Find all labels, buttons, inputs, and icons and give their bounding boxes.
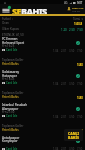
staticText: Istanbul Pasabah (2, 103, 28, 107)
staticText: 2.01 (61, 82, 67, 86)
staticText: 3.50 (69, 82, 75, 86)
staticText: Konyaspor (2, 139, 18, 143)
button[interactable]: CANLI BAHİS (64, 129, 83, 141)
button[interactable]: Canlı İzle (2, 81, 18, 85)
staticText: Galatasaray (2, 70, 20, 74)
staticText: Yrn 21:00 (2, 110, 15, 114)
staticText: Canlı İzle (6, 147, 18, 150)
staticText: 1.83 (77, 63, 83, 67)
staticText: 2.50 (69, 28, 75, 32)
staticText: GIRIS YAP (72, 6, 84, 9)
staticText: FC Emmen (2, 37, 18, 41)
button[interactable] (0, 36, 85, 54)
staticText: Yeterli Bahis (2, 95, 19, 99)
staticText: Alanyaspor (2, 107, 19, 111)
staticText: ÜYE OL (72, 9, 81, 12)
staticText: Toplanan Goller (2, 91, 24, 95)
staticText: 7.50 (77, 28, 83, 32)
staticText: 7.50 (77, 49, 83, 53)
staticText: 1.03.8 (74, 22, 83, 26)
staticText: ETKINLIK #1,50 (2, 33, 24, 37)
staticText: Yeterli Bahis (2, 128, 19, 132)
button[interactable] (0, 56, 85, 66)
staticText: 7.50 (77, 115, 83, 119)
staticText: Tümü ▾ (73, 17, 83, 21)
staticText: 1.83 (77, 96, 83, 100)
staticText: 2.01 (61, 49, 67, 53)
staticText: CANLI BAHİS (68, 131, 79, 140)
button[interactable] (0, 69, 85, 87)
staticText: 4G (64, 1, 68, 5)
staticText: Canlı İzle (6, 48, 18, 52)
staticText: Hatayspor (2, 74, 17, 78)
button[interactable]: Canlı İzle (2, 48, 18, 52)
staticText: 7.50 (77, 147, 83, 150)
staticText: Ülker Kupası (2, 27, 20, 31)
staticText: SE (12, 5, 21, 15)
staticText: 1.04 (53, 82, 59, 86)
staticText: 2.01 (61, 147, 67, 150)
staticText: 1.04 (53, 49, 59, 53)
button[interactable] (0, 135, 85, 150)
staticText: Toplanan Goller (2, 124, 24, 128)
staticText: 3.50 (69, 147, 75, 150)
button[interactable]: Favorite (76, 74, 80, 78)
button[interactable]: Menu (1, 5, 12, 13)
staticText: 1.20 (61, 28, 67, 32)
staticText: Oran (2, 21, 9, 25)
staticText: BAHIS (21, 5, 47, 15)
button[interactable] (0, 102, 85, 120)
staticText: 1.04 (53, 115, 59, 119)
staticText: 9:07 (77, 1, 83, 5)
staticText: Canlı İzle (6, 81, 18, 85)
button[interactable]: Canlı İzle (2, 147, 18, 150)
staticText: 7.50 (77, 82, 83, 86)
staticText: 2.01 (61, 115, 67, 119)
staticText: Futbol › (2, 17, 14, 21)
button[interactable]: GIRIS YAP (67, 6, 84, 12)
staticText: Yeterli Bahis (2, 62, 19, 66)
staticText: 3.50 (69, 49, 75, 53)
staticText: Canlı İzle (6, 114, 18, 118)
staticText: Toplanan Goller (2, 58, 24, 62)
button[interactable] (0, 122, 85, 132)
button[interactable] (0, 89, 85, 99)
staticText: 1.83 (77, 129, 83, 133)
staticText: Yrn 16:25 (2, 44, 15, 48)
button[interactable]: Favorite (76, 107, 80, 111)
staticText: Antalyaspor (2, 136, 20, 140)
button[interactable]: Canlı İzle (2, 114, 18, 118)
staticText: Yrn 18:45 (2, 77, 15, 81)
staticText: 1.04 (53, 147, 59, 150)
button[interactable]: Favorite (76, 41, 80, 45)
staticText: 3.50 (69, 115, 75, 119)
staticText: Helmond Sport (2, 41, 25, 45)
button[interactable]: Favorite (76, 139, 80, 143)
